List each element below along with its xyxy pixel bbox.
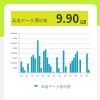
staticText: 高速データ通信量 — [12, 18, 48, 24]
staticText: 9.90 — [56, 11, 79, 27]
staticText: GB — [80, 19, 87, 25]
staticText: 高速データ通信量 — [41, 84, 71, 89]
button[interactable] — [11, 11, 88, 26]
